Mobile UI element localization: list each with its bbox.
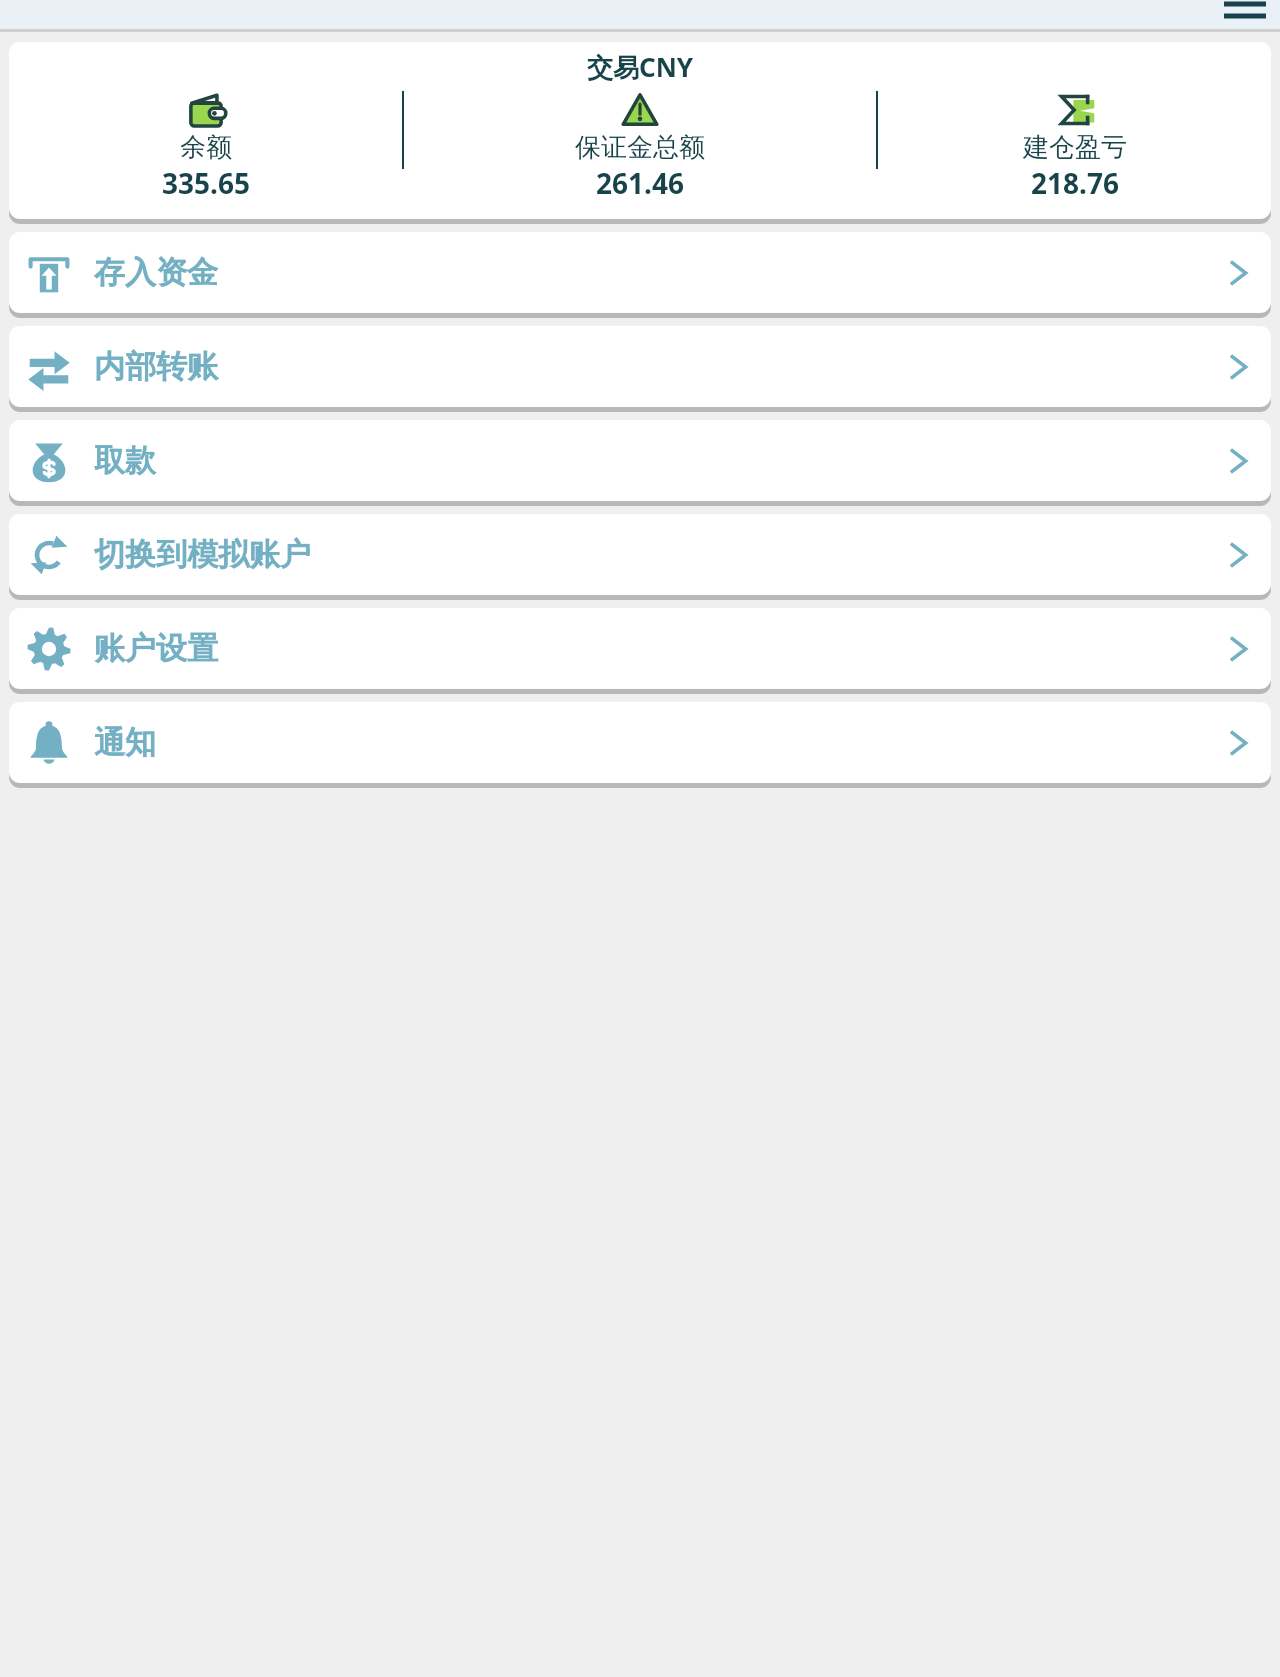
staticText: 335.65 xyxy=(162,164,250,202)
staticText: 切换到模拟账户 xyxy=(94,535,311,574)
staticText: 建仓盈亏 xyxy=(1023,131,1127,164)
staticText: 内部转账 xyxy=(94,347,218,386)
staticText: 261.46 xyxy=(596,164,684,202)
staticText: 保证金总额 xyxy=(575,131,705,164)
button[interactable]: 内部转账 xyxy=(9,326,1271,407)
button[interactable]: 通知 xyxy=(9,702,1271,783)
staticText: 存入资金 xyxy=(94,253,218,292)
staticText: 余额 xyxy=(180,131,232,164)
staticText: 交易CNY xyxy=(9,49,1271,85)
button[interactable]: 存入资金 xyxy=(9,232,1271,313)
button[interactable]: 账户设置 xyxy=(9,608,1271,689)
button[interactable]: 切换到模拟账户 xyxy=(9,514,1271,595)
staticText: 账户设置 xyxy=(94,629,218,668)
staticText: 通知 xyxy=(94,723,156,762)
staticText: 取款 xyxy=(94,441,156,480)
staticText: 218.76 xyxy=(1031,164,1119,202)
button[interactable]: Menu xyxy=(1224,0,1266,20)
button[interactable]: 取款 xyxy=(9,420,1271,501)
